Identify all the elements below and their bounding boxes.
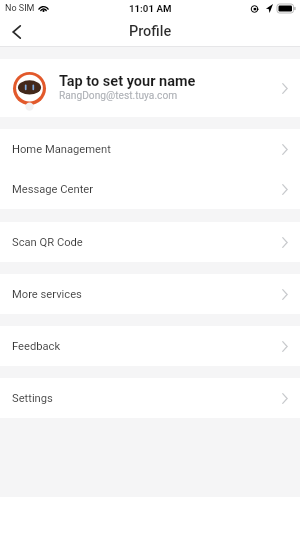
staticText: More services: [12, 288, 82, 301]
staticText: Settings: [12, 392, 53, 405]
button[interactable]: Settings: [0, 378, 300, 418]
staticText: No SIM: [5, 3, 35, 14]
staticText: RangDong@test.tuya.com: [59, 90, 178, 102]
button[interactable]: Tap to set your name: [0, 59, 300, 117]
staticText: Tap to set your name: [59, 73, 196, 90]
button[interactable]: Feedback: [0, 326, 300, 366]
staticText: Feedback: [12, 340, 61, 353]
staticText: Profile: [129, 23, 172, 40]
button[interactable]: Back: [0, 16, 32, 47]
button[interactable]: Home Management: [0, 129, 300, 169]
staticText: Scan QR Code: [12, 236, 83, 249]
staticText: 11:01 AM: [129, 3, 172, 14]
staticText: Message Center: [12, 183, 94, 196]
staticText: Home Management: [12, 143, 111, 156]
button[interactable]: Scan QR Code: [0, 222, 300, 262]
button[interactable]: Message Center: [0, 169, 300, 209]
button[interactable]: More services: [0, 274, 300, 314]
